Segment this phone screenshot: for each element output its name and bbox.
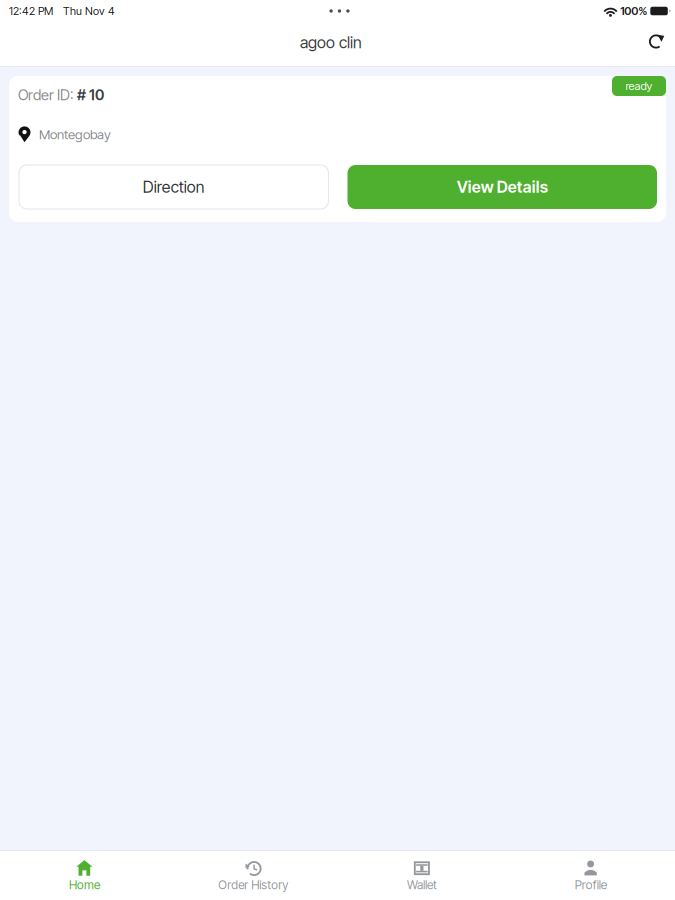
staticText: 12:42 PM <box>9 4 53 18</box>
button[interactable]: Wallet <box>337 846 506 900</box>
button[interactable]: View Details <box>347 165 657 209</box>
staticText: # 10 <box>77 86 104 104</box>
staticText: Montegobay <box>39 126 111 142</box>
staticText: Home <box>69 878 100 892</box>
button[interactable]: Refresh <box>636 27 675 61</box>
staticText: View Details <box>457 177 548 197</box>
button[interactable]: Home <box>0 846 169 900</box>
staticText: Order ID: <box>18 86 73 104</box>
staticText: Profile <box>575 878 607 892</box>
staticText: Order History <box>218 878 288 892</box>
staticText: agoo clin <box>300 33 362 52</box>
button[interactable]: Direction <box>19 165 328 209</box>
staticText: Direction <box>143 177 205 197</box>
staticText: Thu Nov 4 <box>63 4 115 18</box>
staticText: ready <box>625 79 652 93</box>
staticText: Wallet <box>407 878 437 892</box>
staticText: 100% <box>620 4 647 18</box>
button[interactable]: Profile <box>506 846 675 900</box>
button[interactable]: Order History <box>169 846 338 900</box>
